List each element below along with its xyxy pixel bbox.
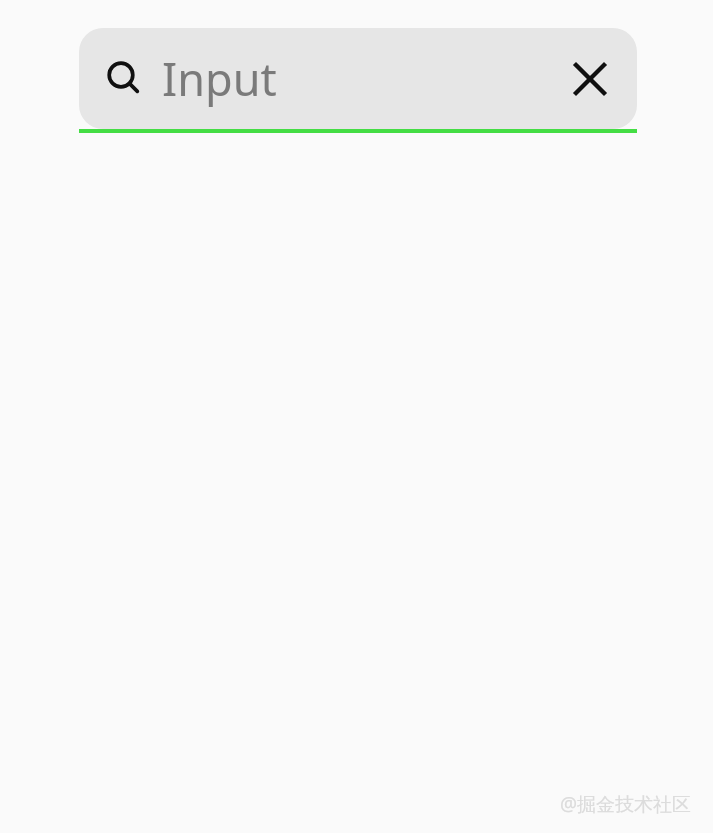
button[interactable]: Clear [563,52,617,106]
button[interactable]: Search [79,28,637,129]
staticText: Input [162,48,563,109]
staticText: @掘金技术社区 [559,791,691,817]
button[interactable]: Search [101,55,149,103]
